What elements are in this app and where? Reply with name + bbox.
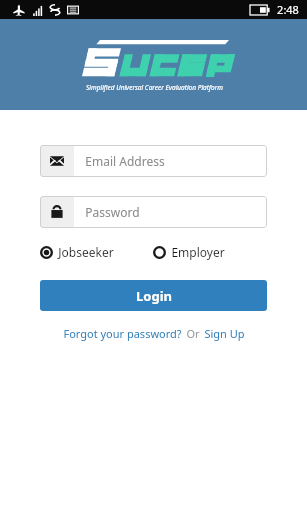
button[interactable]: Forgot your password? [63, 326, 182, 341]
staticText: 2:48 [277, 2, 299, 17]
staticText: Login [136, 287, 172, 305]
staticText: Password [85, 204, 140, 220]
staticText: Or [186, 326, 200, 341]
staticText: Simplified Universal Career Evaluation P… [86, 83, 223, 92]
staticText: Forgot your password? [63, 326, 182, 341]
button[interactable]: Employer [153, 242, 267, 262]
staticText: Sign Up [204, 326, 245, 341]
staticText: Email Address [85, 153, 165, 169]
button[interactable]: Password [40, 196, 267, 228]
staticText: Jobseeker [58, 244, 114, 260]
staticText: Employer [171, 244, 225, 260]
button[interactable]: Email Address [40, 145, 267, 177]
button[interactable]: Login [40, 280, 267, 311]
button[interactable]: Sign Up [204, 326, 245, 341]
button[interactable]: Jobseeker [40, 242, 153, 262]
